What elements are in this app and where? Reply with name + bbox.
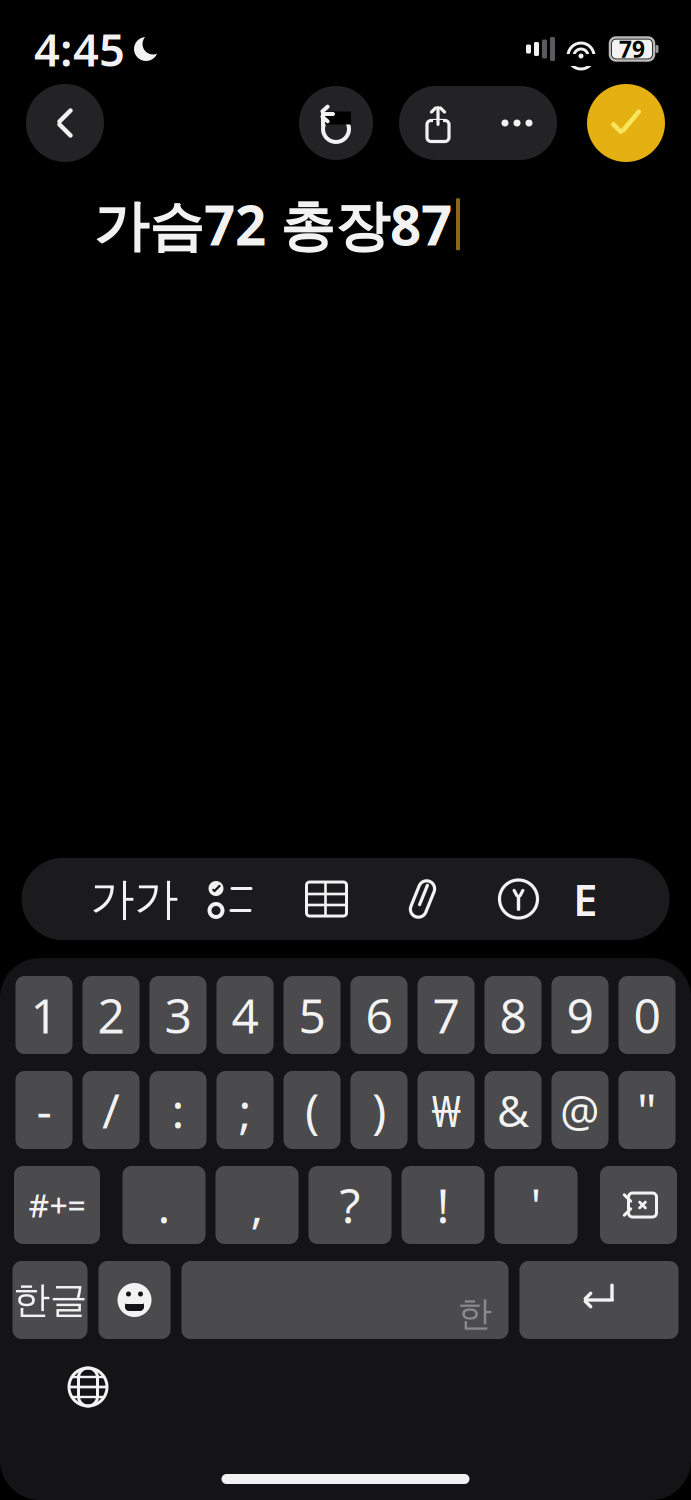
button[interactable]: 6 [350,976,407,1054]
button[interactable]: Done [587,84,665,162]
button[interactable]: More [477,86,557,160]
button[interactable]: ₩ [417,1071,474,1149]
button[interactable]: 3 [149,976,206,1054]
button[interactable]: Next keyboard [56,1355,120,1419]
staticText: ; [238,1078,251,1142]
button[interactable]: Checklist [182,858,278,940]
staticText: ? [339,1173,360,1237]
staticText: 2 [97,983,124,1047]
staticText: : [171,1078,184,1142]
button[interactable]: Share [399,86,477,160]
staticText: 6 [365,983,392,1047]
button[interactable]: & [484,1071,541,1149]
button[interactable]: " [618,1071,675,1149]
staticText: , [250,1173,263,1237]
staticText: 가슴72 총장87 [94,188,452,261]
button[interactable]: 4 [216,976,273,1054]
button[interactable]: Space [181,1261,508,1339]
staticText: 한 [457,1293,492,1335]
staticText: 한글 [13,1277,87,1323]
button[interactable]: Delete [600,1166,677,1244]
button[interactable]: Text format [86,858,182,940]
staticText: 5 [298,983,325,1047]
button[interactable]: @ [551,1071,608,1149]
button[interactable]: 7 [417,976,474,1054]
staticText: 7 [432,983,459,1047]
staticText: & [497,1081,529,1139]
staticText: 4:45 [34,19,125,79]
staticText: 4 [231,983,258,1047]
button[interactable]: ) [350,1071,407,1149]
button[interactable]: 1 [15,976,72,1054]
staticText: 1 [30,983,57,1047]
button[interactable]: 8 [484,976,541,1054]
button[interactable]: ( [283,1071,340,1149]
staticText: #+= [28,1184,85,1226]
button[interactable]: Back [26,84,104,162]
staticText: @ [560,1081,600,1139]
staticText: ₩ [431,1081,460,1139]
button[interactable]: More tools [566,858,604,940]
button[interactable]: - [15,1071,72,1149]
button[interactable]: ! [401,1166,484,1244]
button[interactable]: 9 [551,976,608,1054]
staticText: 0 [633,983,660,1047]
staticText: ) [372,1078,386,1142]
button[interactable]: ? [308,1166,391,1244]
button[interactable]: Undo [299,86,373,160]
button[interactable]: ' [494,1166,577,1244]
staticText: - [36,1078,51,1142]
button[interactable]: / [82,1071,139,1149]
staticText: 8 [499,983,526,1047]
staticText: E [573,870,598,928]
button[interactable]: #+= [14,1166,100,1244]
staticText: ' [530,1173,541,1237]
button[interactable]: 2 [82,976,139,1054]
button[interactable]: 0 [618,976,675,1054]
staticText: 9 [566,983,593,1047]
button[interactable]: , [215,1166,298,1244]
button[interactable]: Markup [470,858,566,940]
staticText: ! [436,1173,449,1237]
button[interactable]: ; [216,1071,273,1149]
staticText: 가가 [90,872,178,926]
staticText: 79 [619,34,645,64]
button[interactable]: : [149,1071,206,1149]
button[interactable]: Return [519,1261,678,1339]
staticText: ( [305,1078,319,1142]
button[interactable]: 5 [283,976,340,1054]
staticText: 3 [164,983,191,1047]
button[interactable]: Attach file [374,858,470,940]
button[interactable]: . [122,1166,205,1244]
staticText: " [637,1078,657,1142]
button[interactable]: Table [278,858,374,940]
button[interactable]: 한글 [12,1261,87,1339]
button[interactable]: Emoji [98,1261,170,1339]
staticText: . [157,1173,170,1237]
staticText: / [102,1078,120,1142]
